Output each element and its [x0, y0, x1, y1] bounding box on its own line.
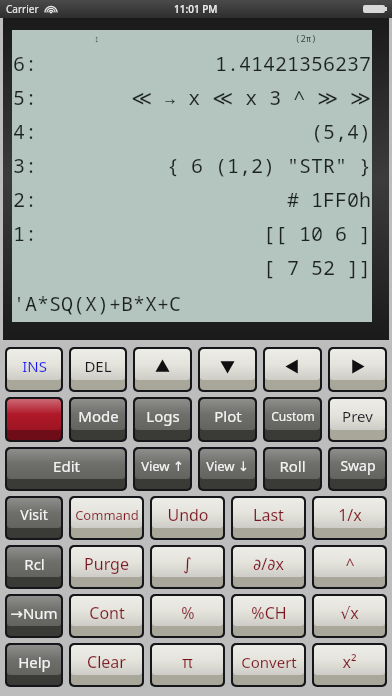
staticText: Last [253, 504, 284, 526]
staticText: →Num [10, 603, 58, 623]
staticText: [[ 10 6 ] [263, 220, 371, 247]
staticText: Undo [167, 504, 209, 526]
staticText: { 6 (1,2) "STR" } [167, 152, 371, 179]
button[interactable]: INS [7, 349, 61, 390]
staticText: % [181, 602, 195, 624]
button[interactable]: π [152, 645, 223, 685]
staticText: Clear [87, 651, 126, 673]
button[interactable]: Rcl [7, 547, 61, 587]
button[interactable]: Undo [152, 498, 223, 538]
button[interactable]: Up [135, 349, 190, 390]
button[interactable]: Swap [330, 449, 385, 489]
staticText: Custom [271, 408, 315, 424]
staticText: Cont [89, 602, 125, 624]
button[interactable]: Convert [233, 645, 304, 685]
staticText: DEL [84, 356, 112, 376]
button[interactable]: Edit [7, 449, 125, 489]
button[interactable]: Plot [200, 399, 255, 440]
staticText: 3: [13, 152, 37, 179]
staticText: 5: [13, 84, 37, 111]
staticText: 2: [13, 186, 37, 213]
staticText: ≪ → x ≪ x 3 ^ ≫ ≫ [131, 84, 371, 111]
staticText: Convert [241, 652, 297, 672]
staticText: Rcl [24, 554, 45, 574]
staticText: 1/x [338, 504, 362, 526]
staticText: 6: [13, 50, 37, 77]
staticText: √x [340, 602, 359, 624]
button[interactable]: %CH [233, 596, 304, 636]
button[interactable]: Prev [330, 399, 385, 440]
button[interactable]: DEL [71, 349, 125, 390]
staticText: ∫ [183, 554, 192, 574]
button[interactable]: Command [71, 498, 142, 538]
staticText: Visit [20, 505, 48, 524]
staticText: View ↑ [141, 457, 184, 475]
staticText: 'A*SQ(X)+B*X+C [13, 290, 181, 317]
button[interactable]: View ↑ [135, 449, 190, 489]
staticText: ∂/∂x [253, 553, 284, 575]
staticText: %CH [251, 602, 287, 624]
button[interactable]: ^ [314, 547, 385, 587]
button[interactable]: Visit [7, 498, 61, 538]
staticText: Mode [78, 406, 119, 426]
staticText: 11:01 PM [174, 2, 218, 16]
button[interactable]: √x [314, 596, 385, 636]
button[interactable]: Roll [265, 449, 320, 489]
staticText: ↕ [94, 32, 100, 44]
button[interactable]: Clear [71, 645, 142, 685]
button[interactable]: Last [233, 498, 304, 538]
button[interactable]: 1/x [314, 498, 385, 538]
button[interactable]: Right [330, 349, 385, 390]
button[interactable]: Cont [71, 596, 142, 636]
staticText: Logs [146, 406, 180, 426]
button[interactable]: View ↓ [200, 449, 255, 489]
staticText: π [182, 651, 193, 673]
button[interactable]: Purge [71, 547, 142, 587]
button[interactable]: ∫ [152, 547, 223, 587]
staticText: 1: [13, 220, 37, 247]
button[interactable]: Down [200, 349, 255, 390]
staticText: Roll [279, 456, 306, 476]
staticText: 4: [13, 118, 37, 145]
staticText: Prev [342, 406, 373, 426]
button[interactable]: Help [7, 645, 61, 685]
staticText: 1.41421356237 [215, 50, 371, 77]
button[interactable]: x² [314, 645, 385, 685]
staticText: View ↓ [206, 457, 249, 475]
staticText: ^ [345, 553, 355, 575]
staticText: [ 7 52 ]] [263, 254, 371, 281]
button[interactable]: Shift [7, 399, 61, 440]
staticText: Help [18, 652, 51, 672]
staticText: Purge [84, 553, 129, 575]
staticText: x² [342, 651, 357, 673]
staticText: Swap [340, 456, 376, 475]
staticText: Plot [214, 406, 242, 426]
staticText: Carrier [6, 2, 39, 16]
staticText: # 1FF0h [287, 186, 371, 213]
button[interactable]: Mode [71, 399, 125, 440]
staticText: (5,4) [311, 118, 371, 145]
staticText: Edit [53, 456, 80, 476]
button[interactable]: % [152, 596, 223, 636]
button[interactable]: Custom [265, 399, 320, 440]
button[interactable]: Logs [135, 399, 190, 440]
staticText: Command [75, 506, 139, 524]
staticText: (2π) [295, 32, 317, 44]
button[interactable]: ∂/∂x [233, 547, 304, 587]
button[interactable]: →Num [7, 596, 61, 636]
staticText: INS [22, 356, 47, 376]
button[interactable]: Left [265, 349, 320, 390]
